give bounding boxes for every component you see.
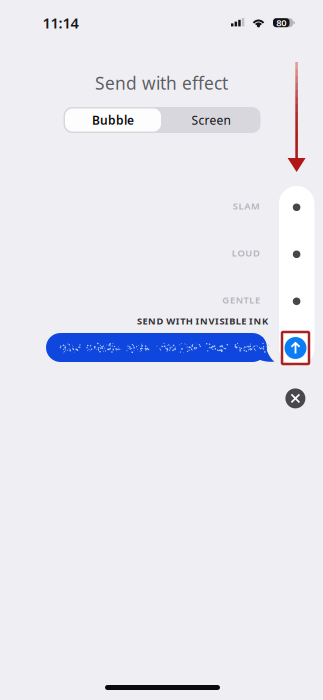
staticText: 11:14 <box>42 13 78 32</box>
staticText: LOUD <box>232 247 260 259</box>
button[interactable]: Send <box>282 332 309 364</box>
staticText: Send with effect <box>95 71 228 94</box>
staticText: GENTLE <box>222 294 260 306</box>
staticText: Bubble <box>92 112 134 128</box>
staticText: SEND WITH INVISIBLE INK <box>137 315 268 327</box>
staticText: Screen <box>191 112 230 128</box>
button[interactable]: Bubble <box>65 108 161 131</box>
staticText: SLAM <box>233 200 260 212</box>
staticText: 80 <box>276 16 286 29</box>
button[interactable]: Screen <box>163 108 259 131</box>
button[interactable]: Close <box>285 388 305 408</box>
